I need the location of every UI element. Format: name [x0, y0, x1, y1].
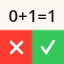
- button[interactable]: Wrong: [0, 29, 32, 64]
- staticText: 0+1=1: [8, 4, 57, 27]
- button[interactable]: Correct: [32, 29, 64, 64]
